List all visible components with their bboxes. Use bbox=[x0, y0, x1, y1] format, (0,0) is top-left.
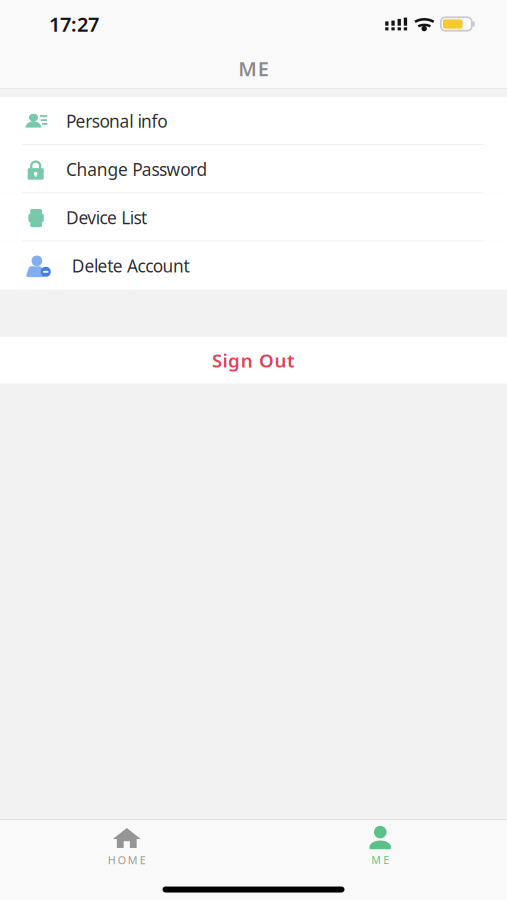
button[interactable]: Personal info bbox=[0, 97, 507, 145]
staticText: ME bbox=[238, 55, 269, 82]
staticText: ME bbox=[371, 853, 389, 867]
staticText: Personal info bbox=[66, 110, 167, 133]
staticText: Device List bbox=[66, 206, 147, 229]
staticText: 17:27 bbox=[49, 11, 99, 37]
staticText: Sign Out bbox=[212, 348, 295, 373]
button[interactable]: Change Password bbox=[0, 145, 507, 193]
button[interactable]: Delete Account bbox=[0, 242, 507, 290]
button[interactable]: Sign Out bbox=[0, 337, 507, 384]
staticText: Change Password bbox=[66, 158, 207, 181]
button[interactable]: HOME bbox=[0, 820, 253, 879]
button[interactable]: Device List bbox=[0, 193, 507, 242]
staticText: HOME bbox=[108, 853, 146, 867]
button[interactable]: ME bbox=[253, 820, 507, 879]
staticText: Delete Account bbox=[72, 254, 190, 277]
